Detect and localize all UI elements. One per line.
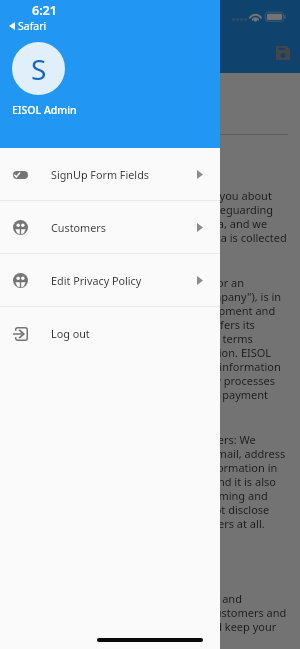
staticText: Information we collect from our customer… <box>12 432 288 531</box>
staticText: SignUp Form Fields <box>51 167 149 182</box>
button[interactable]: Edit Privacy Policy <box>0 254 220 307</box>
button[interactable]: Log out <box>0 307 220 359</box>
staticText: Customers <box>51 220 106 235</box>
staticText: EISOL Pte Ltd and all of its subsidiarie… <box>12 275 288 416</box>
staticText: Safari <box>18 19 47 33</box>
staticText: Edit Privacy Policy <box>51 273 142 288</box>
staticText: EISOL Admin <box>12 103 77 117</box>
button[interactable]: Customers <box>0 201 220 254</box>
staticText: Log out <box>51 326 90 341</box>
staticText: 6:21 <box>32 2 57 19</box>
button[interactable]: Close navigation drawer <box>0 0 300 649</box>
staticText: S <box>31 50 47 88</box>
staticText: This Privacy Policy is intended to infor… <box>12 188 288 259</box>
button[interactable]: Save <box>269 39 296 66</box>
staticText: Security: We are concerned about safety … <box>12 591 288 648</box>
button[interactable]: SignUp Form Fields <box>0 148 220 201</box>
